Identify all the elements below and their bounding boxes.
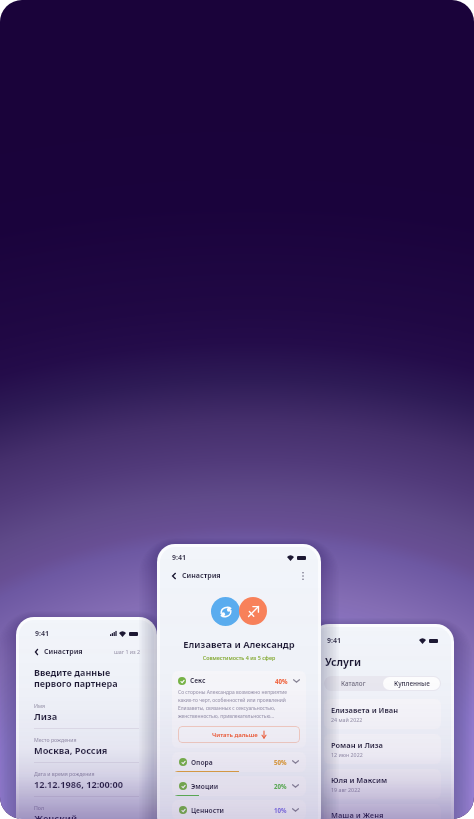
staticText: 20% — [274, 782, 287, 790]
staticText: 12.12.1986, 12:00:00 — [34, 778, 123, 791]
staticText: Юля и Максим — [331, 775, 388, 785]
staticText: Секс — [190, 676, 206, 685]
button[interactable]: Back — [169, 571, 179, 581]
staticText: Ценности — [191, 806, 224, 815]
staticText: 24 май 2022 — [331, 716, 363, 723]
staticText: Имя — [34, 702, 45, 709]
staticText: 50% — [274, 758, 287, 766]
button[interactable]: Маша и Женя — [324, 804, 441, 819]
staticText: Женский — [34, 812, 78, 819]
staticText: Читать дальше — [212, 731, 258, 739]
button[interactable]: Каталог — [324, 676, 382, 691]
staticText: Лиза — [34, 710, 58, 723]
staticText: 40% — [275, 677, 288, 685]
staticText: Место рождения — [34, 736, 77, 743]
button[interactable]: Опора — [172, 752, 306, 772]
button[interactable]: Back — [31, 647, 41, 657]
button[interactable]: Эмоции — [172, 776, 306, 796]
staticText: шаг 1 из 2 — [114, 648, 141, 655]
button[interactable]: Роман и Лиза — [324, 734, 441, 764]
staticText: Роман и Лиза — [331, 740, 383, 750]
button[interactable]: Ценности — [172, 800, 306, 819]
staticText: Совместимость 4 из 5 сфер — [160, 654, 318, 661]
staticText: 9:41 — [327, 636, 341, 646]
staticText: 9:41 — [172, 553, 186, 563]
staticText: Елизавета и Иван — [331, 705, 399, 715]
staticText: Со стороны Александра возможно неприятие… — [178, 689, 300, 720]
button[interactable]: Пол — [34, 804, 139, 819]
button[interactable]: Юля и Максим — [324, 769, 441, 799]
staticText: Пол — [34, 804, 44, 811]
staticText: 12 июн 2022 — [331, 751, 363, 758]
button[interactable]: More options — [298, 571, 308, 581]
staticText: Опора — [191, 758, 213, 767]
staticText: Эмоции — [191, 782, 219, 791]
button[interactable]: Имя — [34, 702, 139, 729]
staticText: Синастрия — [182, 571, 221, 581]
staticText: 19 авг 2022 — [331, 786, 361, 793]
staticText: Купленные — [394, 679, 430, 688]
button[interactable]: Читать дальше — [178, 726, 300, 743]
staticText: Синастрия — [44, 647, 83, 657]
staticText: Услуги — [325, 655, 362, 669]
button[interactable]: Елизавета и Иван — [324, 699, 441, 729]
staticText: Елизавета и Александр — [160, 638, 318, 651]
staticText: Москва, Россия — [34, 744, 108, 757]
staticText: 10% — [274, 806, 287, 814]
staticText: Маша и Женя — [331, 810, 384, 819]
button[interactable]: Купленные — [383, 677, 440, 690]
staticText: Введите данные первого партнера — [34, 666, 118, 690]
button[interactable]: Место рождения — [34, 736, 139, 763]
button[interactable]: Дата и время рождения — [34, 770, 139, 797]
staticText: Каталог — [341, 679, 366, 688]
staticText: 9:41 — [35, 629, 49, 639]
staticText: Дата и время рождения — [34, 770, 95, 777]
